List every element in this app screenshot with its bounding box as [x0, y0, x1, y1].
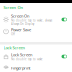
staticText: Screen On [3, 5, 23, 10]
button[interactable]: Power Save [0, 26, 72, 36]
staticText: No double tap to wake [11, 57, 43, 61]
button[interactable]: Screen On [0, 13, 72, 26]
button[interactable]: Lock Screen [0, 51, 72, 61]
staticText: No double tap to wake, always [11, 19, 52, 22]
staticText: Off [11, 32, 15, 36]
staticText: Power Save [11, 27, 31, 32]
staticText: Lock Screen [3, 45, 25, 50]
staticText: Always On Display [11, 22, 34, 26]
staticText: Lock Screen [11, 52, 32, 57]
staticText: Screen On [11, 13, 29, 19]
button[interactable]: Fingerprint [0, 64, 72, 72]
staticText: Fingerprint [11, 65, 30, 71]
